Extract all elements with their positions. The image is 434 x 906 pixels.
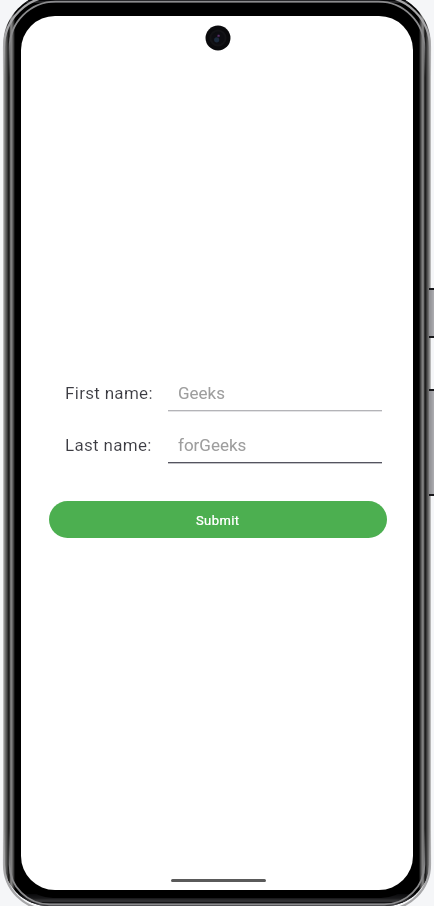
staticText: forGeeks xyxy=(178,435,247,455)
staticText: Submit xyxy=(196,513,240,528)
button[interactable]: Geeks xyxy=(168,371,382,405)
staticText: First name: xyxy=(65,383,153,403)
staticText: Geeks xyxy=(178,383,225,403)
button[interactable]: Submit xyxy=(49,501,387,538)
button[interactable]: forGeeks xyxy=(168,423,382,457)
staticText: Last name: xyxy=(65,435,152,455)
